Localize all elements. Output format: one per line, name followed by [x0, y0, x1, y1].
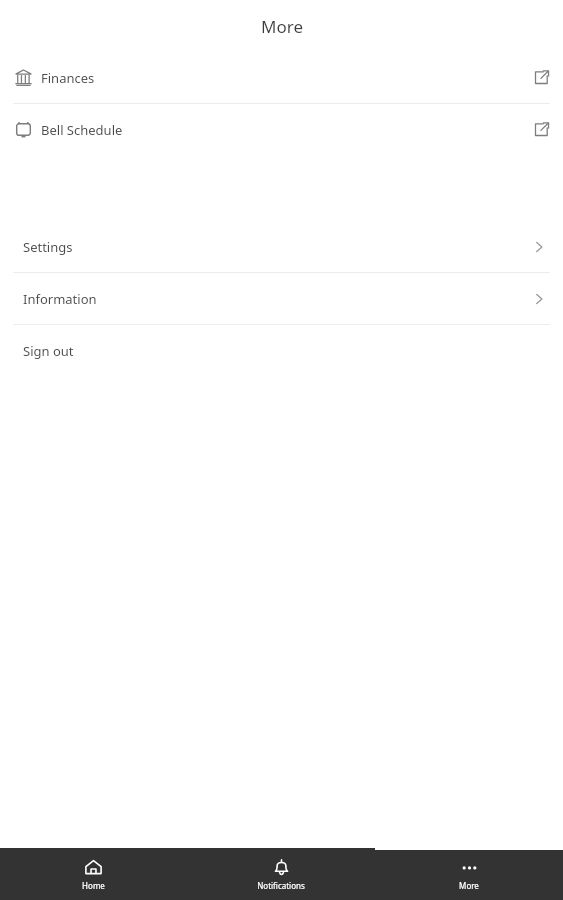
- staticText: Settings: [23, 238, 73, 256]
- staticText: More: [459, 880, 479, 891]
- button[interactable]: Home: [0, 848, 187, 900]
- button[interactable]: Notifications: [187, 848, 375, 900]
- staticText: Home: [82, 880, 105, 891]
- staticText: Sign out: [23, 342, 74, 360]
- other: Open Finances externally: [534, 70, 549, 85]
- button[interactable]: More: [375, 848, 563, 900]
- other: Open Bell Schedule externally: [534, 122, 549, 137]
- staticText: Finances: [41, 69, 95, 87]
- button[interactable]: Finances: [0, 52, 563, 103]
- button[interactable]: Bell Schedule: [0, 104, 563, 155]
- staticText: Information: [23, 290, 97, 308]
- staticText: Bell Schedule: [41, 121, 123, 139]
- staticText: Notifications: [257, 880, 305, 891]
- staticText: More: [261, 15, 303, 38]
- button[interactable]: Sign out: [0, 325, 563, 376]
- button[interactable]: Information: [0, 273, 563, 324]
- button[interactable]: Settings: [0, 221, 563, 272]
